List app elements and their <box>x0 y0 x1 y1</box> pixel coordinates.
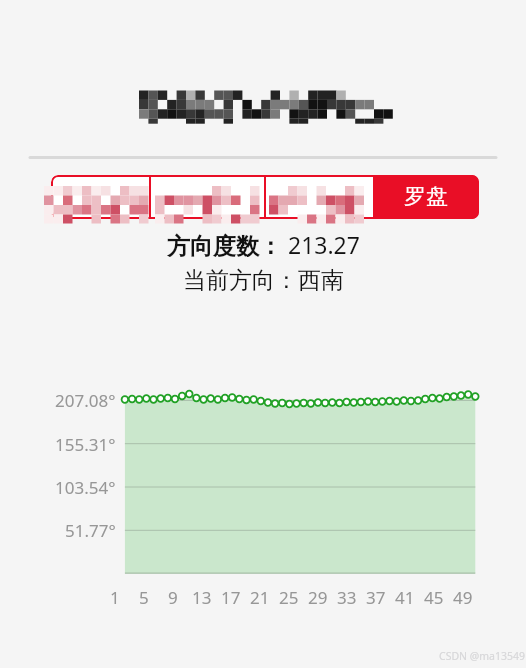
staticText: 罗盘 <box>404 183 448 211</box>
staticText: 方向度数： 213.27 <box>167 229 360 257</box>
staticText: 13 <box>192 586 212 608</box>
staticText: 9 <box>168 586 178 608</box>
staticText: 17 <box>221 586 241 608</box>
staticText: 103.54° <box>55 476 116 499</box>
staticText: 25 <box>279 586 299 608</box>
staticText: 1 <box>110 586 120 608</box>
staticText: 29 <box>308 586 328 608</box>
button[interactable]: 罗盘 <box>373 175 479 219</box>
staticText: 21 <box>250 586 270 608</box>
staticText: 49 <box>453 586 473 608</box>
staticText: 207.08° <box>55 389 116 412</box>
button[interactable] <box>151 175 264 219</box>
staticText: 当前方向：西南 <box>183 266 344 294</box>
button[interactable] <box>266 175 373 219</box>
staticText: 45 <box>424 586 444 608</box>
staticText: CSDN @ma13549 <box>439 649 525 663</box>
staticText: 51.77° <box>65 519 116 542</box>
button[interactable] <box>51 175 149 219</box>
staticText: 37 <box>366 586 386 608</box>
staticText: 41 <box>395 586 415 608</box>
staticText: 33 <box>337 586 357 608</box>
staticText: 5 <box>139 586 149 608</box>
staticText: 155.31° <box>55 433 116 456</box>
